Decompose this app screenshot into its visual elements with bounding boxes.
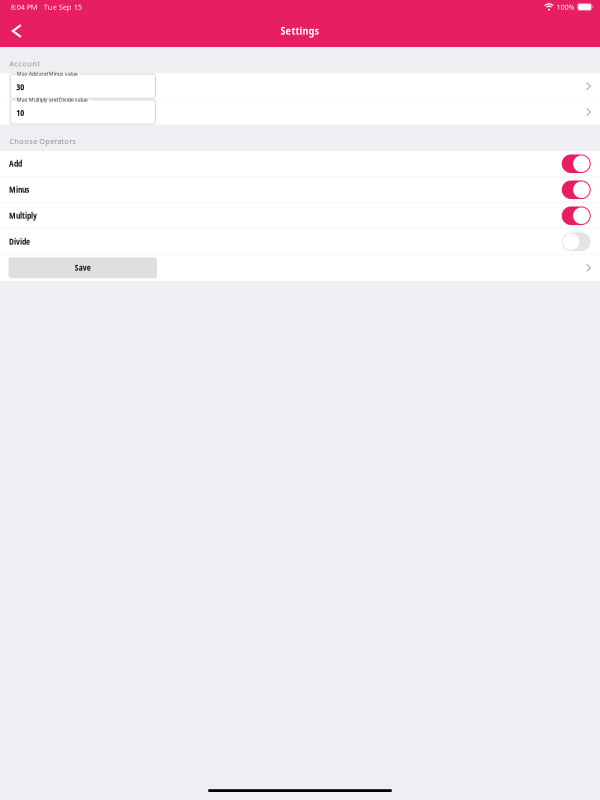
staticText: Divide: [9, 236, 30, 247]
button[interactable]: Minus: [0, 177, 600, 202]
staticText: Minus: [9, 184, 29, 195]
staticText: 8:04 PM Tue Sep 15: [11, 2, 82, 12]
button[interactable]: Save: [0, 255, 600, 280]
staticText: Account: [9, 58, 40, 69]
button[interactable]: Divide: [0, 229, 600, 254]
staticText: Max Multiply and Divide value: [17, 96, 88, 103]
button[interactable]: Back: [0, 17, 31, 45]
staticText: 10: [16, 107, 24, 118]
staticText: 30: [16, 82, 24, 92]
button[interactable]: Multiply: [0, 203, 600, 228]
staticText: 100%: [556, 2, 574, 12]
button[interactable]: Add: [0, 151, 600, 176]
staticText: Choose Operators: [9, 136, 76, 146]
button[interactable]: Max Multiply and Divide value: [0, 99, 600, 125]
staticText: Save: [75, 262, 91, 273]
staticText: Settings: [280, 23, 319, 38]
staticText: Add: [9, 158, 22, 169]
staticText: Multiply: [9, 210, 37, 221]
staticText: Max Add and Minus value: [17, 70, 78, 77]
button[interactable]: Max Add and Minus value: [0, 73, 600, 99]
